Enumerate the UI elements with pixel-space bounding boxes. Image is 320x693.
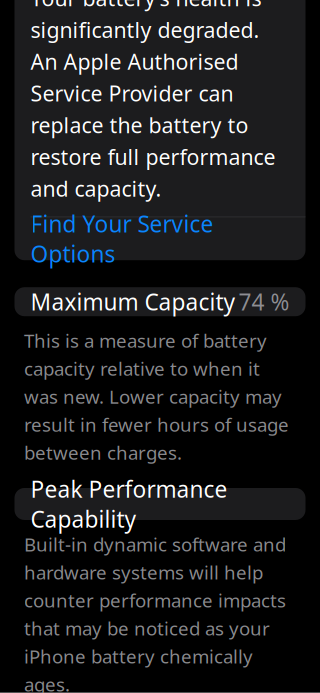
button[interactable]: Find Your Service Options [14, 217, 305, 260]
staticText: Peak Performance Capability [30, 474, 227, 534]
button[interactable]: Maximum Capacity [14, 287, 305, 316]
staticText: Your battery’s health is significantly d… [30, 0, 275, 203]
staticText: 74 % [238, 287, 289, 317]
button[interactable]: Peak Performance Capability [14, 488, 305, 520]
staticText: Find Your Service Options [30, 209, 213, 269]
staticText: This is a measure of battery capacity re… [24, 328, 289, 465]
staticText: Maximum Capacity [30, 287, 235, 317]
staticText: Built-in dynamic software and hardware s… [24, 532, 286, 693]
